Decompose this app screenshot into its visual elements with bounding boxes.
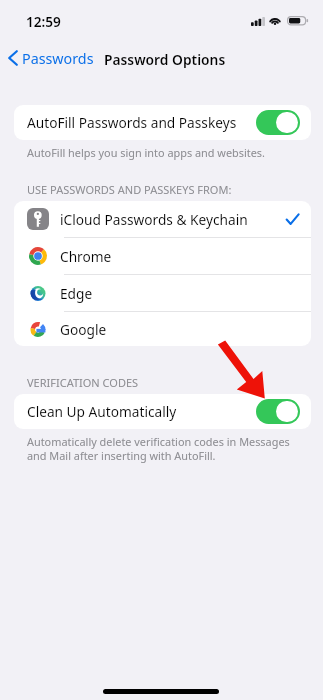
button[interactable]: Passwords bbox=[5, 46, 100, 70]
button[interactable]: Chrome bbox=[14, 238, 311, 274]
staticText: AutoFill Passwords and Passkeys bbox=[27, 113, 237, 132]
staticText: Automatically delete verification codes … bbox=[27, 434, 299, 463]
staticText: Clean Up Automatically bbox=[27, 402, 177, 421]
button[interactable]: Google bbox=[14, 312, 311, 346]
staticText: iCloud Passwords & Keychain bbox=[60, 210, 248, 229]
button[interactable]: Toggle bbox=[256, 399, 300, 424]
staticText: Passwords bbox=[22, 49, 94, 68]
button[interactable]: iCloud Passwords & Keychain bbox=[14, 201, 311, 237]
staticText: Edge bbox=[60, 284, 93, 303]
staticText: USE PASSWORDS AND PASSKEYS FROM: bbox=[27, 182, 232, 197]
staticText: Chrome bbox=[60, 247, 112, 266]
button[interactable]: Toggle bbox=[256, 110, 300, 135]
button[interactable]: Clean Up Automatically bbox=[14, 394, 311, 428]
staticText: 12:59 bbox=[26, 12, 61, 31]
staticText: Password Options bbox=[104, 50, 226, 69]
button[interactable]: AutoFill Passwords and Passkeys bbox=[14, 105, 311, 139]
staticText: AutoFill helps you sign into apps and we… bbox=[27, 145, 299, 160]
button[interactable]: Edge bbox=[14, 275, 311, 311]
staticText: VERIFICATION CODES bbox=[27, 375, 139, 390]
staticText: Google bbox=[60, 320, 107, 339]
